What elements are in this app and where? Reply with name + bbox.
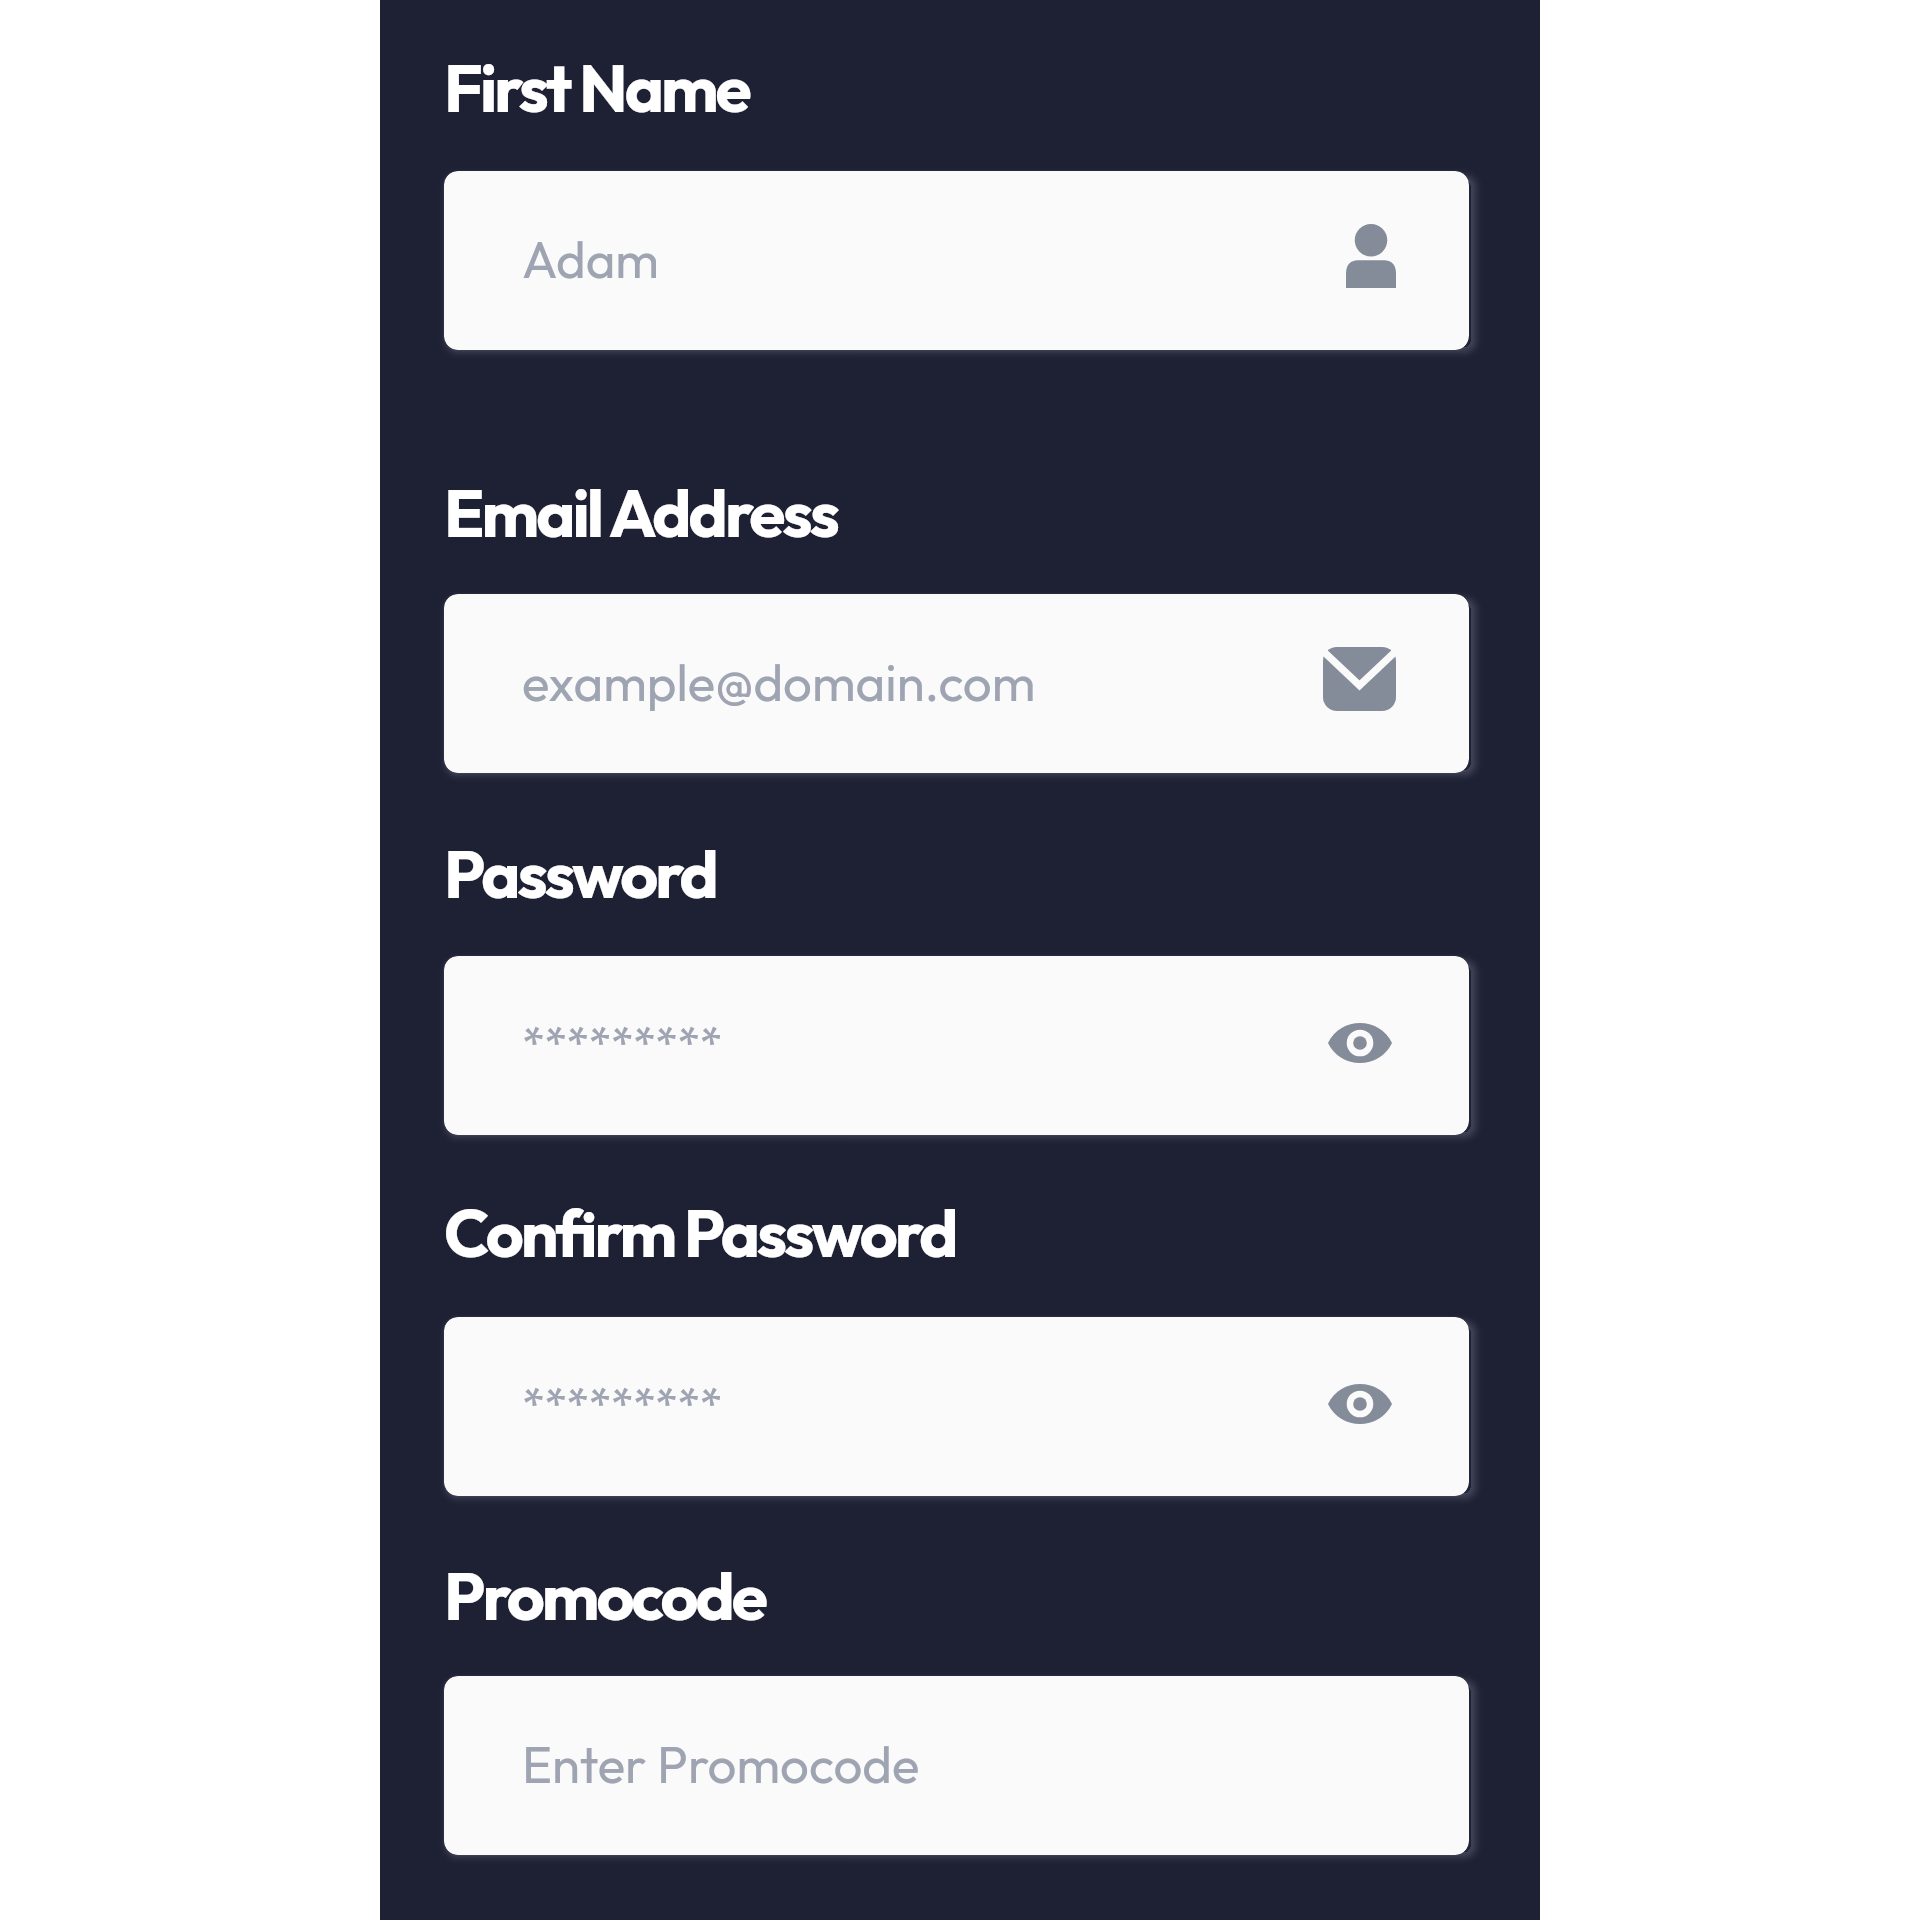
staticText: example@domain.com <box>522 650 1036 714</box>
staticText: Enter Promocode <box>522 1732 920 1796</box>
button[interactable]: Adam <box>444 171 1469 350</box>
other: First name <box>1346 224 1396 288</box>
staticText: ********* <box>522 1014 722 1073</box>
button[interactable]: Show password <box>1328 1024 1392 1062</box>
staticText: Adam <box>522 227 659 291</box>
other: Email address <box>1323 647 1396 711</box>
button[interactable]: ********* <box>444 1317 1469 1496</box>
staticText: ********* <box>522 1375 722 1434</box>
button[interactable]: ********* <box>444 956 1469 1135</box>
button[interactable]: example@domain.com <box>444 594 1469 773</box>
button[interactable]: Show password <box>1328 1385 1392 1423</box>
button[interactable]: Enter Promocode <box>444 1676 1469 1855</box>
staticText: Password <box>444 832 716 915</box>
staticText: Confirm Password <box>444 1191 956 1274</box>
staticText: Email Address <box>444 471 837 554</box>
staticText: First Name <box>444 46 749 129</box>
staticText: Promocode <box>444 1554 766 1637</box>
